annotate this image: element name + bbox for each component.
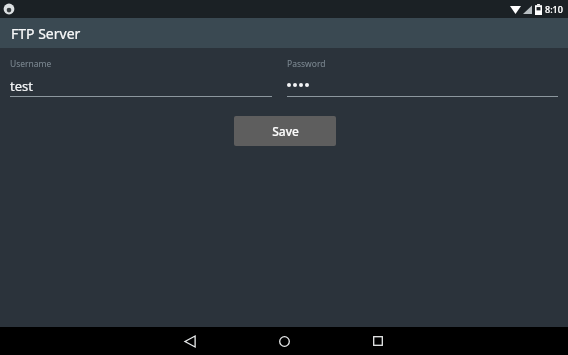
staticText: 8:10 bbox=[545, 3, 563, 15]
button[interactable]: Back bbox=[170, 327, 210, 355]
button[interactable]: Recent apps bbox=[358, 327, 398, 355]
button[interactable]: Save bbox=[234, 116, 336, 146]
staticText: FTP Server bbox=[11, 24, 81, 43]
staticText: Username bbox=[10, 58, 52, 70]
button[interactable]: Password bbox=[287, 58, 558, 97]
button[interactable]: Username bbox=[10, 58, 272, 97]
button[interactable]: Home bbox=[264, 327, 304, 355]
staticText: Save bbox=[272, 123, 299, 139]
staticText: test bbox=[10, 77, 33, 92]
staticText: Password bbox=[287, 58, 326, 70]
